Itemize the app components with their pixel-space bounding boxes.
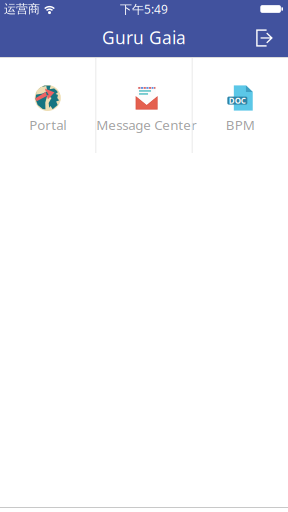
staticText: DOC xyxy=(229,95,246,106)
staticText: Message Center xyxy=(96,116,197,134)
staticText: BPM xyxy=(226,116,255,134)
button[interactable]: DOC xyxy=(193,58,288,153)
staticText: 运营商 xyxy=(4,2,40,16)
staticText: Portal xyxy=(29,116,66,134)
button[interactable]: Message Center xyxy=(96,58,192,153)
button[interactable]: Portal xyxy=(0,58,95,153)
staticText: 下午5:49 xyxy=(120,1,168,17)
button[interactable]: Log out xyxy=(244,18,288,57)
staticText: Guru Gaia xyxy=(102,26,186,49)
